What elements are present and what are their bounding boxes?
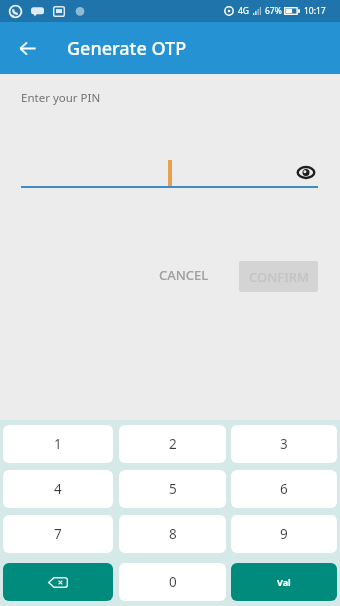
- button[interactable]: 3: [231, 425, 337, 463]
- button[interactable]: CONFIRM: [239, 261, 318, 292]
- staticText: Val: [277, 576, 291, 588]
- staticText: 67%: [265, 5, 282, 17]
- button[interactable]: Show PIN: [294, 160, 318, 184]
- button[interactable]: CANCEL: [147, 260, 221, 290]
- button[interactable]: PIN input field: [21, 155, 286, 188]
- staticText: 9: [280, 525, 288, 543]
- staticText: CANCEL: [159, 266, 209, 284]
- button[interactable]: 6: [231, 470, 337, 508]
- button[interactable]: 8: [119, 515, 226, 553]
- staticText: 10:17: [304, 5, 326, 17]
- staticText: 4: [54, 480, 62, 498]
- staticText: 7: [54, 525, 62, 543]
- button[interactable]: Val: [231, 563, 337, 601]
- button[interactable]: 0: [119, 563, 226, 601]
- button[interactable]: 1: [3, 425, 113, 463]
- staticText: 2: [169, 435, 177, 453]
- staticText: 0: [169, 573, 177, 591]
- staticText: 8: [169, 525, 177, 543]
- button[interactable]: 5: [119, 470, 226, 508]
- staticText: 3: [280, 435, 288, 453]
- staticText: CONFIRM: [249, 268, 309, 286]
- button[interactable]: Back: [11, 32, 43, 64]
- button[interactable]: 4: [3, 470, 113, 508]
- button[interactable]: 7: [3, 515, 113, 553]
- staticText: 4G: [238, 5, 250, 17]
- staticText: 5: [169, 480, 177, 498]
- button[interactable]: 2: [119, 425, 226, 463]
- button[interactable]: 9: [231, 515, 337, 553]
- staticText: Generate OTP: [67, 36, 187, 61]
- staticText: 6: [280, 480, 288, 498]
- staticText: Enter your PIN: [21, 90, 101, 106]
- button[interactable]: Backspace: [3, 563, 113, 601]
- staticText: 1: [54, 435, 62, 453]
